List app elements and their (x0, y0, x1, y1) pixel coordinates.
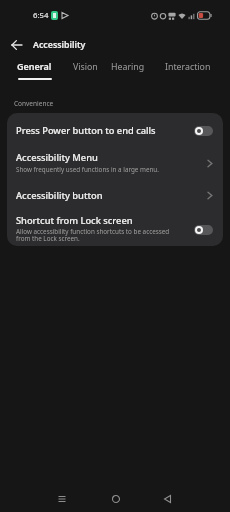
button[interactable] (194, 225, 213, 235)
staticText: Accessibility (33, 39, 86, 51)
button[interactable]: Accessibility button (7, 176, 223, 214)
staticText: Accessibility button (16, 189, 207, 202)
staticText: Convenience (14, 99, 54, 108)
button[interactable]: General (17, 60, 52, 80)
staticText: Allow accessibility function shortcuts t… (16, 227, 170, 243)
button[interactable]: Vision (73, 61, 98, 73)
button[interactable] (194, 126, 213, 136)
staticText: Show frequently used functions in a larg… (16, 165, 159, 174)
staticText: 6:54 (33, 10, 49, 21)
staticText: Press Power button to end calls (16, 124, 194, 137)
button[interactable]: Press Power button to end calls (7, 113, 223, 150)
button[interactable]: Accessibility Menu (7, 150, 223, 176)
button[interactable] (11, 39, 23, 51)
button[interactable] (159, 489, 175, 505)
button[interactable]: Shortcut from Lock screen (7, 214, 223, 246)
button[interactable] (107, 489, 123, 505)
button[interactable] (54, 489, 70, 505)
staticText: Shortcut from Lock screen (16, 214, 133, 227)
staticText: Accessibility Menu (16, 151, 98, 164)
staticText: General (17, 60, 52, 72)
button[interactable]: Hearing (111, 61, 145, 73)
button[interactable]: Interaction (165, 61, 211, 73)
